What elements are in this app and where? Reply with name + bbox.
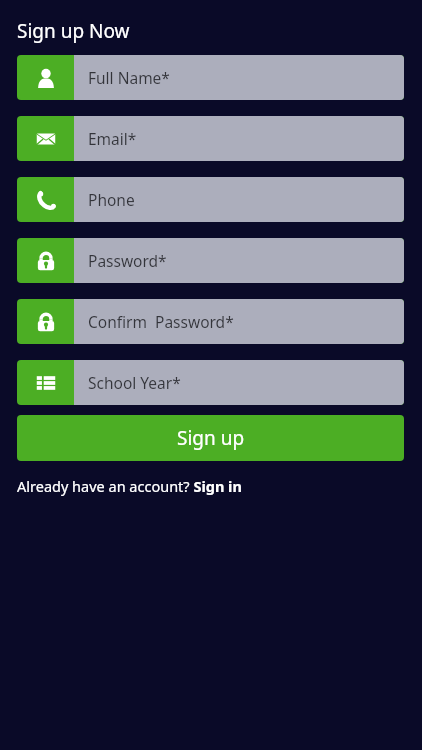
button[interactable]: Password xyxy=(17,238,404,283)
button[interactable]: Full name xyxy=(17,55,404,100)
other: Password xyxy=(17,299,74,344)
button[interactable]: Already have an account? Sign in xyxy=(17,476,242,496)
staticText: Sign up Now xyxy=(17,18,130,44)
staticText: School Year* xyxy=(88,372,181,393)
staticText: Sign up xyxy=(177,425,245,451)
other: Password xyxy=(17,238,74,283)
button[interactable]: Sign up xyxy=(17,415,404,461)
button[interactable]: Email xyxy=(17,116,404,161)
staticText: Confirm Password* xyxy=(88,311,234,332)
staticText: Already have an account? Sign in xyxy=(17,476,242,496)
button[interactable]: Phone xyxy=(17,177,404,222)
other: Phone xyxy=(17,177,74,222)
other: Full name xyxy=(17,55,74,100)
staticText: Email* xyxy=(88,128,137,149)
staticText: Password* xyxy=(88,250,167,271)
staticText: Phone xyxy=(88,189,135,210)
other: Email xyxy=(17,116,74,161)
other: School year xyxy=(17,360,74,405)
staticText: Full Name* xyxy=(88,67,170,88)
button[interactable]: School year xyxy=(17,360,404,405)
button[interactable]: Password xyxy=(17,299,404,344)
